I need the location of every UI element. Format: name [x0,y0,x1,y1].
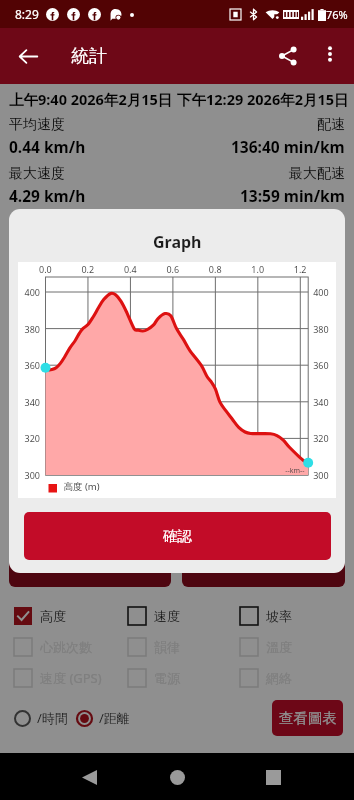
staticText: 配速 [317,116,345,134]
staticText: 電源 [154,670,180,686]
staticText: 韻律 [154,639,180,655]
button[interactable]: Back [6,34,50,78]
button[interactable]: 溫度 [240,638,292,656]
staticText: 136:40 min/km [231,136,345,157]
button[interactable]: 韻律 [128,638,180,656]
button[interactable]: Back [74,762,104,792]
staticText: 上午9:40 2026年2月15日 [9,89,173,109]
staticText: 0.44 km/h [9,136,86,157]
staticText: 平均速度 [9,116,65,134]
button[interactable]: 網絡 [240,669,292,687]
button[interactable]: 查看圖表 [272,700,343,736]
button[interactable] [182,555,345,587]
staticText: 下午12:29 2026年2月15日 [177,89,349,109]
staticText: 統計 [71,45,107,68]
staticText: 76% [326,7,348,22]
button[interactable]: 高度 [14,607,66,625]
button[interactable]: Home [162,762,192,792]
button[interactable]: /時間 [14,709,68,727]
staticText: 溫度 [266,639,292,655]
staticText: 坡率 [266,608,292,624]
button[interactable]: More options [310,34,350,74]
staticText: Graph [153,231,202,253]
button[interactable]: 速度 [128,607,180,625]
staticText: /距離 [99,709,130,727]
button[interactable]: 速度 (GPS) [14,669,102,687]
staticText: 13:59 min/km [240,185,345,206]
staticText: 確認 [163,527,192,545]
staticText: 8:29 [15,6,39,22]
button[interactable]: Share [266,34,310,78]
staticText: 最大配速 [289,165,345,183]
staticText: 高度 [40,608,66,624]
staticText: 查看圖表 [279,709,337,727]
button[interactable]: /距離 [76,709,130,727]
staticText: /時間 [37,709,68,727]
staticText: 速度 (GPS) [40,669,102,687]
button[interactable]: 電源 [128,669,180,687]
button[interactable]: Recents [258,762,288,792]
staticText: 心跳次數 [40,639,92,655]
staticText: 4.29 km/h [9,185,86,206]
button[interactable]: 坡率 [240,607,292,625]
button[interactable] [9,555,171,587]
staticText: 最大速度 [9,165,65,183]
staticText: 速度 [154,608,180,624]
button[interactable]: 心跳次數 [14,638,92,656]
staticText: 網絡 [266,670,292,686]
button[interactable]: 確認 [24,512,331,560]
